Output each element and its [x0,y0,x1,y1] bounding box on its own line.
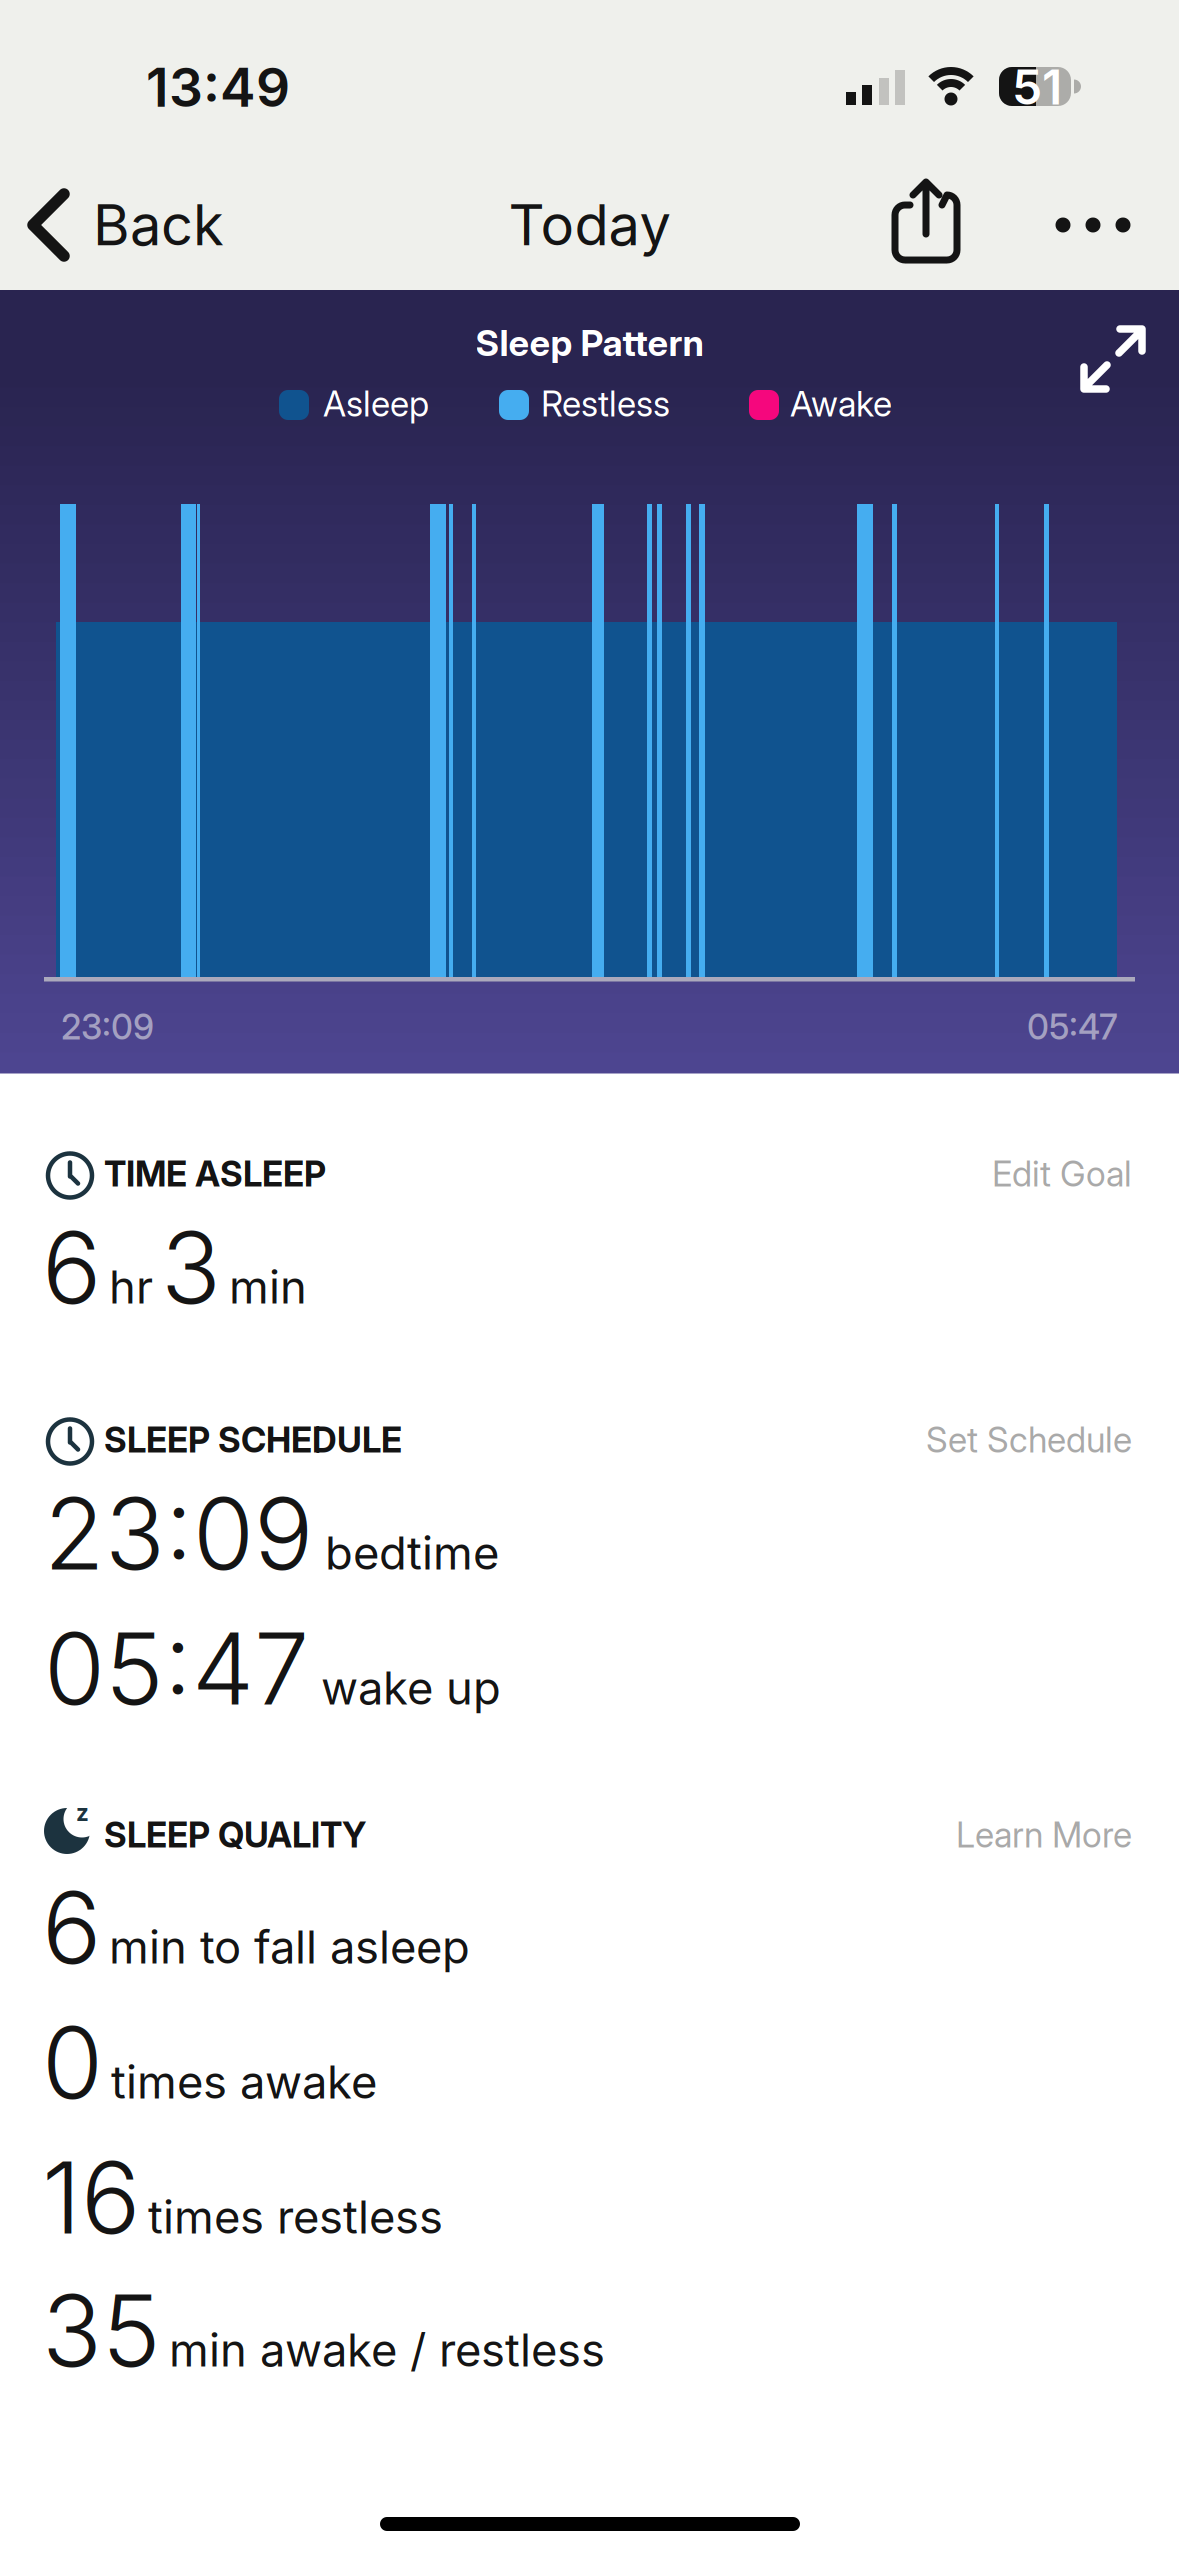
staticText: SLEEP QUALITY [104,1814,366,1856]
staticText: Sleep Pattern [475,321,703,365]
staticText: Today [508,191,670,259]
staticText: times restless [148,2190,443,2245]
staticText: min [229,1260,307,1315]
staticText: hr [109,1260,153,1315]
staticText: bedtime [325,1526,499,1581]
staticText: 6 [42,1868,101,1987]
staticText: 16 [42,2138,140,2257]
staticText: 23:09 [61,1006,154,1048]
staticText: SLEEP SCHEDULE [104,1419,402,1461]
staticText: 0 [42,2003,103,2122]
staticText: 23:09 [44,1474,313,1593]
staticText: 13:49 [146,55,290,119]
button[interactable]: Edit Goal [992,1153,1132,1195]
staticText: Back [93,191,224,259]
button[interactable]: Learn More [956,1814,1132,1856]
staticText: 05:47 [44,1609,309,1728]
button[interactable] [1081,326,1145,392]
button[interactable]: Set Schedule [926,1419,1132,1461]
staticText: TIME ASLEEP [104,1153,326,1195]
staticText: 6 [42,1208,101,1327]
staticText: 05:47 [1027,1006,1118,1048]
button[interactable] [893,176,959,262]
staticText: min to fall asleep [109,1920,470,1975]
staticText: times awake [111,2055,377,2110]
staticText: Awake [790,383,892,425]
staticText: wake up [321,1661,501,1716]
staticText: 51 [1012,58,1062,116]
staticText: 3 [161,1208,221,1327]
button[interactable] [1055,217,1135,233]
staticText: z [76,1799,89,1826]
staticText: Learn More [956,1814,1132,1856]
staticText: 35 [42,2271,161,2390]
button[interactable]: Back [28,191,201,259]
staticText: Edit Goal [992,1153,1132,1195]
staticText: Restless [541,383,670,425]
staticText: min awake / restless [169,2323,605,2378]
staticText: Asleep [323,383,429,425]
staticText: Set Schedule [926,1419,1132,1461]
